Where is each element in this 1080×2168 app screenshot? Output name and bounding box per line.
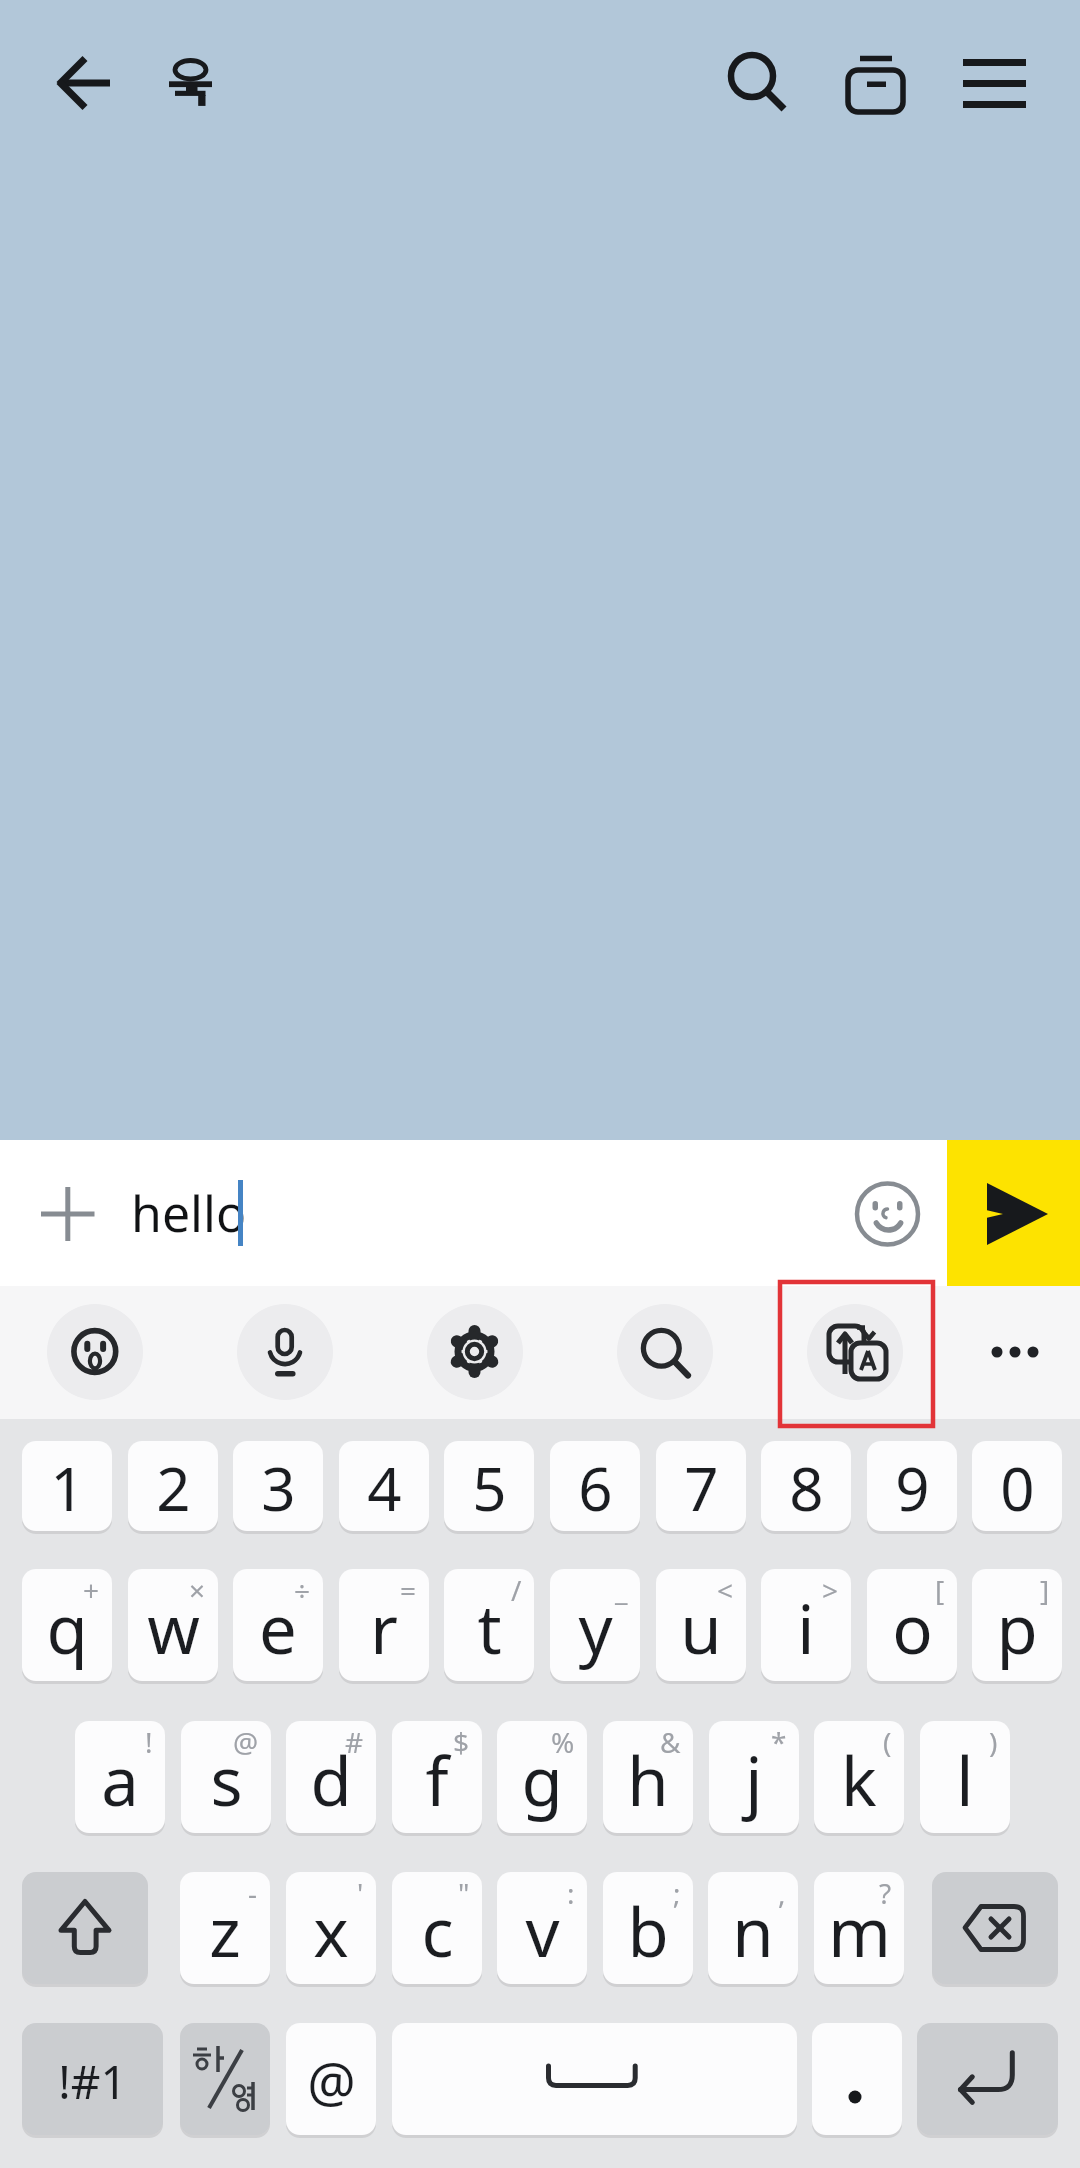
- button[interactable]: g: [497, 1721, 587, 1833]
- staticText: s: [210, 1734, 243, 1825]
- staticText: k: [841, 1734, 877, 1825]
- staticText: ]: [1040, 1571, 1050, 1609]
- button[interactable]: [22, 1872, 148, 1984]
- button[interactable]: @: [286, 2023, 376, 2135]
- button[interactable]: t: [444, 1569, 534, 1681]
- button[interactable]: v: [497, 1872, 587, 1984]
- staticText: 6: [578, 1447, 613, 1529]
- staticText: $: [453, 1723, 470, 1761]
- button[interactable]: q: [22, 1569, 112, 1681]
- button[interactable]: [47, 1304, 143, 1400]
- staticText: l: [956, 1734, 974, 1825]
- button[interactable]: i: [761, 1569, 851, 1681]
- staticText: j: [745, 1734, 763, 1825]
- staticText: #: [345, 1723, 364, 1761]
- staticText: o: [892, 1582, 933, 1673]
- staticText: ": [458, 1874, 470, 1912]
- staticText: (: [883, 1723, 892, 1761]
- button[interactable]: 7: [656, 1441, 746, 1531]
- staticText: p: [996, 1582, 1038, 1673]
- button[interactable]: 9: [867, 1441, 957, 1531]
- button[interactable]: [812, 2023, 902, 2135]
- button[interactable]: 5: [444, 1441, 534, 1531]
- staticText: *: [771, 1723, 787, 1761]
- button[interactable]: 3: [233, 1441, 323, 1531]
- staticText: 7: [684, 1447, 719, 1529]
- staticText: 2: [156, 1447, 191, 1529]
- button[interactable]: z: [180, 1872, 270, 1984]
- button[interactable]: m: [814, 1872, 904, 1984]
- button[interactable]: [392, 2023, 797, 2135]
- button[interactable]: c: [392, 1872, 482, 1984]
- button[interactable]: o: [867, 1569, 957, 1681]
- button[interactable]: n: [708, 1872, 798, 1984]
- button[interactable]: [917, 2023, 1058, 2135]
- button[interactable]: [0, 1140, 1080, 1286]
- button[interactable]: [706, 32, 802, 128]
- staticText: x: [313, 1885, 349, 1976]
- button[interactable]: [979, 1316, 1051, 1388]
- button[interactable]: h: [603, 1721, 693, 1833]
- staticText: d: [310, 1734, 352, 1825]
- staticText: >: [822, 1571, 839, 1609]
- button[interactable]: 4: [339, 1441, 429, 1531]
- button[interactable]: [828, 32, 924, 128]
- staticText: ?: [879, 1874, 892, 1912]
- button[interactable]: l: [920, 1721, 1010, 1833]
- staticText: y: [578, 1582, 613, 1673]
- button[interactable]: 6: [550, 1441, 640, 1531]
- staticText: ): [989, 1723, 998, 1761]
- button[interactable]: j: [709, 1721, 799, 1833]
- button[interactable]: 0: [972, 1441, 1062, 1531]
- staticText: <: [717, 1571, 734, 1609]
- staticText: ,: [778, 1874, 786, 1912]
- button[interactable]: d: [286, 1721, 376, 1833]
- button[interactable]: p: [972, 1569, 1062, 1681]
- button[interactable]: b: [603, 1872, 693, 1984]
- staticText: /: [511, 1571, 522, 1609]
- staticText: 0: [1000, 1447, 1035, 1529]
- button[interactable]: [427, 1304, 523, 1400]
- button[interactable]: 1: [22, 1441, 112, 1531]
- button[interactable]: [180, 2023, 270, 2135]
- staticText: 9: [895, 1447, 930, 1529]
- staticText: e: [259, 1582, 297, 1673]
- button[interactable]: !#1: [22, 2023, 163, 2135]
- button[interactable]: r: [339, 1569, 429, 1681]
- staticText: f: [425, 1734, 449, 1825]
- staticText: :: [567, 1874, 575, 1912]
- staticText: r: [370, 1582, 398, 1673]
- button[interactable]: [948, 32, 1044, 128]
- button[interactable]: 2: [128, 1441, 218, 1531]
- button[interactable]: x: [286, 1872, 376, 1984]
- button[interactable]: f: [392, 1721, 482, 1833]
- staticText: ×: [189, 1571, 206, 1609]
- button[interactable]: [932, 1872, 1058, 1984]
- button[interactable]: 8: [761, 1441, 851, 1531]
- button[interactable]: w: [128, 1569, 218, 1681]
- button[interactable]: [37, 40, 133, 128]
- staticText: [: [935, 1571, 945, 1609]
- staticText: n: [732, 1885, 774, 1976]
- button[interactable]: y: [550, 1569, 640, 1681]
- staticText: _: [615, 1571, 628, 1609]
- staticText: w: [147, 1582, 200, 1673]
- staticText: 3: [261, 1447, 296, 1529]
- button[interactable]: s: [181, 1721, 271, 1833]
- staticText: =: [400, 1571, 417, 1609]
- staticText: m: [828, 1885, 891, 1976]
- staticText: !: [145, 1723, 153, 1761]
- staticText: 5: [472, 1447, 507, 1529]
- button[interactable]: e: [233, 1569, 323, 1681]
- button[interactable]: [807, 1304, 903, 1400]
- staticText: 1: [50, 1447, 85, 1529]
- staticText: %: [551, 1723, 575, 1761]
- button[interactable]: k: [814, 1721, 904, 1833]
- staticText: b: [627, 1885, 669, 1976]
- staticText: hello: [131, 1179, 247, 1247]
- button[interactable]: [237, 1304, 333, 1400]
- button[interactable]: u: [656, 1569, 746, 1681]
- button[interactable]: [947, 1140, 1080, 1286]
- button[interactable]: a: [75, 1721, 165, 1833]
- button[interactable]: [617, 1304, 713, 1400]
